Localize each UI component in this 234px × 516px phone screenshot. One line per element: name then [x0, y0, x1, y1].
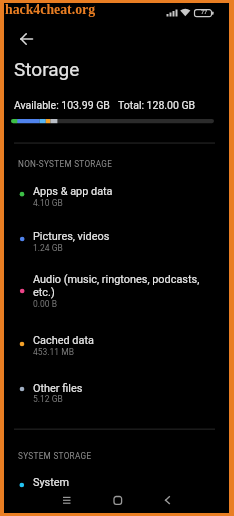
- staticText: 4.10 GB: [33, 198, 63, 208]
- button[interactable]: [0, 219, 228, 261]
- button[interactable]: [99, 489, 137, 513]
- staticText: Apps & app data: [33, 185, 113, 198]
- staticText: 1.24 GB: [33, 243, 63, 253]
- staticText: Audio (music, ringtones, podcasts,: [33, 273, 200, 286]
- staticText: hack4cheat.org: [5, 2, 96, 17]
- staticText: Pictures, videos: [33, 230, 110, 243]
- staticText: SYSTEM STORAGE: [18, 451, 92, 461]
- button[interactable]: [0, 371, 228, 413]
- staticText: 77: [201, 9, 208, 15]
- staticText: 0.00 B: [33, 299, 57, 309]
- button[interactable]: [48, 489, 86, 513]
- button[interactable]: [10, 27, 44, 51]
- staticText: etc.): [33, 286, 55, 299]
- staticText: Cached data: [33, 334, 94, 347]
- staticText: Total: 128.00 GB: [118, 99, 196, 111]
- button[interactable]: [0, 323, 228, 365]
- button[interactable]: [0, 462, 228, 492]
- button[interactable]: [149, 489, 187, 513]
- staticText: Available: 103.99 GB: [14, 99, 110, 111]
- staticText: System: [33, 476, 70, 489]
- staticText: 453.11 MB: [33, 347, 74, 357]
- staticText: Other files: [33, 382, 83, 395]
- staticText: NON-SYSTEM STORAGE: [18, 159, 113, 169]
- button[interactable]: [0, 264, 228, 316]
- staticText: 5.12 GB: [33, 394, 63, 404]
- staticText: Storage: [14, 58, 80, 80]
- button[interactable]: [0, 174, 228, 216]
